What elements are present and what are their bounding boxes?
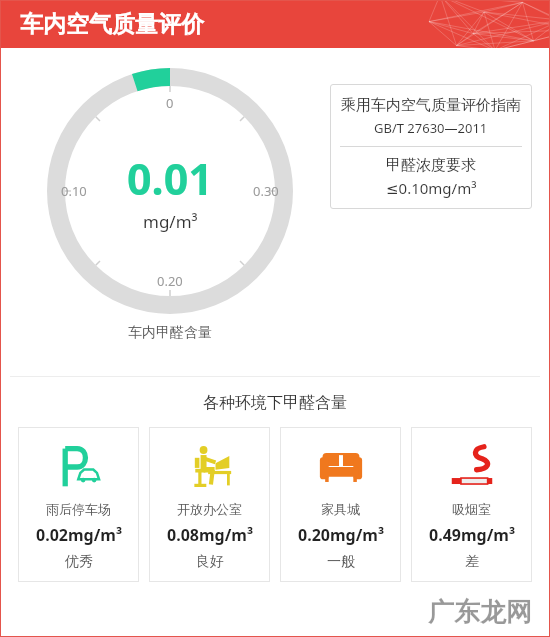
staticText: 0.10	[61, 182, 87, 200]
staticText: 甲醛浓度要求	[386, 156, 476, 175]
staticText: 优秀	[65, 553, 93, 571]
staticText: 0	[166, 94, 174, 112]
staticText: 0.49mg/m³	[429, 524, 515, 546]
button[interactable]: Parking lot after rain	[18, 427, 139, 582]
staticText: 0.02mg/m³	[36, 524, 122, 546]
button[interactable]: Furniture store	[280, 427, 401, 582]
staticText: 差	[465, 553, 479, 571]
staticText: GB/T 27630—2011	[374, 119, 488, 137]
button[interactable]: Open office	[149, 427, 270, 582]
staticText: 广东龙网	[428, 596, 532, 629]
staticText: 车内甲醛含量	[47, 324, 293, 342]
other: Parking lot after rain	[56, 444, 102, 490]
staticText: 良好	[196, 553, 224, 571]
button[interactable]: Smoking room	[411, 427, 532, 582]
staticText: 开放办公室	[177, 501, 242, 517]
staticText: 一般	[327, 553, 355, 571]
staticText: 0.01	[127, 149, 213, 208]
staticText: 0.20	[157, 272, 183, 290]
other: Smoking room	[449, 444, 495, 490]
other: Furniture store	[319, 445, 363, 489]
staticText: 各种环境下甲醛含量	[0, 393, 550, 413]
staticText: 吸烟室	[452, 501, 491, 517]
staticText: 车内空气质量评价	[20, 10, 204, 39]
staticText: 0.30	[253, 182, 279, 200]
staticText: 0.20mg/m³	[298, 524, 384, 546]
other: Open office	[187, 444, 233, 490]
staticText: 雨后停车场	[46, 501, 111, 517]
staticText: 0.08mg/m³	[167, 524, 253, 546]
staticText: 家具城	[321, 501, 360, 517]
staticText: ≤0.10mg/m³	[386, 178, 477, 198]
staticText: mg/m³	[143, 210, 198, 233]
staticText: 乘用车内空气质量评价指南	[341, 96, 521, 115]
